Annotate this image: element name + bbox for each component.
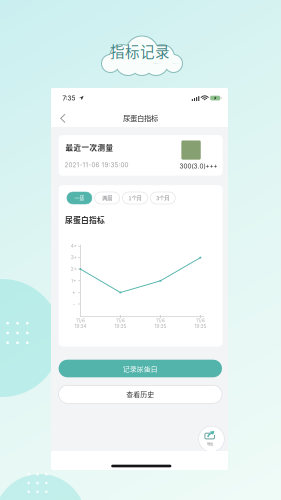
staticText: 19:35 [194,323,206,329]
staticText: 300(3.0)+++ [179,162,217,170]
staticText: 查看历史 [126,389,154,399]
staticText: ± [72,290,75,295]
staticText: 最近一次测量 [65,142,113,153]
staticText: 记录尿蛋白 [123,363,158,373]
staticText: 一周 [74,194,84,202]
staticText: 19:35 [154,323,166,329]
button[interactable]: 返回 [55,109,71,127]
staticText: 11/6 [116,318,125,323]
staticText: 两周 [102,194,112,202]
staticText: 2021-11-06 19:35:00 [65,161,129,169]
staticText: 1个月 [128,194,141,202]
staticText: 指标记录 [110,40,170,61]
button[interactable]: 一周 [67,192,92,204]
staticText: 尿蛋白指标 [123,113,158,123]
staticText: 3个月 [156,194,169,202]
staticText: 导出 [207,441,213,446]
staticText: 3+ [71,255,77,260]
button[interactable]: 两周 [95,192,120,204]
staticText: 19:34 [74,323,86,329]
button[interactable]: 记录尿蛋白 [59,360,222,377]
staticText: 2+ [71,266,77,272]
staticText: 11/6 [76,318,85,323]
staticText: 7:35 [62,94,75,102]
staticText: 1+ [71,278,76,284]
staticText: 19:35 [114,323,126,329]
button[interactable]: 查看历史 [59,385,222,403]
staticText: 尿蛋白指标 [65,214,105,225]
staticText: 11/6 [196,318,205,323]
button[interactable]: 3个月 [150,192,175,204]
staticText: 4+ [71,243,77,249]
button[interactable]: 1个月 [122,192,147,204]
staticText: - [73,301,75,307]
button[interactable]: 导出 [198,425,225,452]
staticText: 11/6 [156,318,165,323]
